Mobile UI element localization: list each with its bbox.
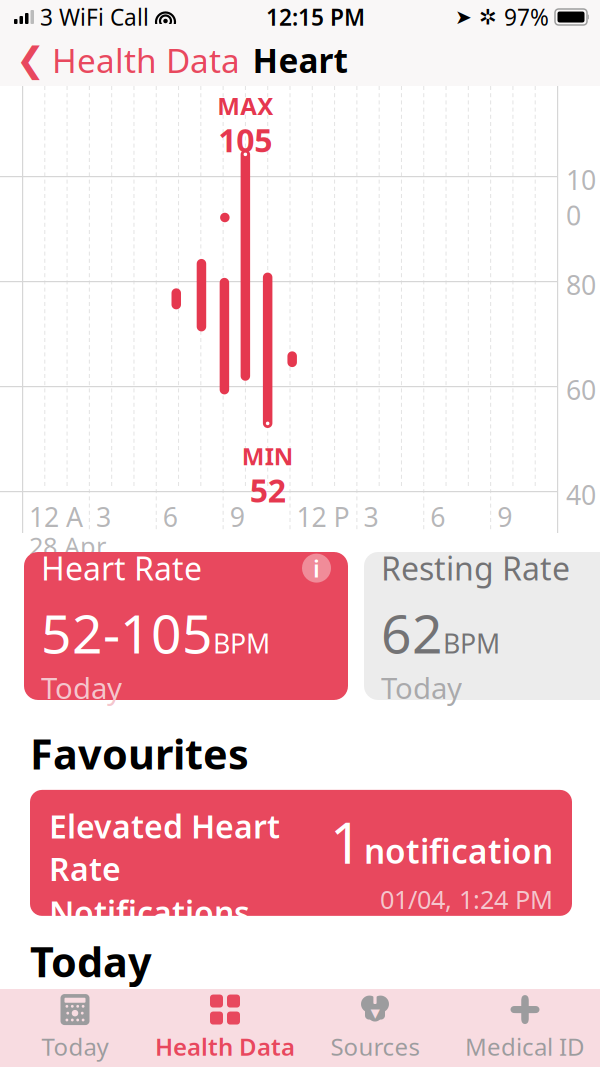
- staticText: 62: [381, 597, 443, 668]
- staticText: i: [313, 552, 320, 584]
- staticText: 80: [566, 267, 596, 302]
- button[interactable]: Heart Rate: [24, 552, 348, 700]
- staticText: 6: [430, 499, 445, 534]
- staticText: Today: [41, 668, 122, 707]
- staticText: 9: [497, 499, 512, 534]
- staticText: 12 P: [296, 499, 349, 534]
- staticText: Medical ID: [465, 1031, 585, 1062]
- staticText: 12:15 PM: [266, 2, 365, 32]
- staticText: 01/04, 1:24 PM: [380, 882, 553, 916]
- staticText: 12 A: [29, 499, 83, 534]
- staticText: Heart Rate: [41, 547, 202, 589]
- button[interactable]: Resting Rate: [364, 552, 600, 700]
- staticText: Today: [381, 668, 462, 707]
- staticText: 3: [363, 499, 378, 534]
- staticText: MIN: [242, 440, 294, 472]
- staticText: 52: [250, 469, 286, 511]
- staticText: BPM: [213, 625, 270, 661]
- button[interactable]: Elevated Heart Rate: [30, 790, 572, 916]
- staticText: 60: [566, 372, 596, 407]
- staticText: ➤: [455, 6, 472, 28]
- staticText: 97%: [504, 2, 555, 32]
- staticText: ✲: [472, 5, 504, 29]
- staticText: ▾: [370, 1002, 379, 1023]
- staticText: 6: [163, 499, 178, 534]
- staticText: Favourites: [30, 726, 249, 781]
- staticText: Sources: [330, 1031, 419, 1062]
- staticText: Elevated Heart Rate: [49, 805, 280, 890]
- staticText: 1: [330, 805, 362, 879]
- staticText: 100: [566, 162, 596, 233]
- staticText: notification: [364, 829, 553, 873]
- staticText: BPM: [443, 625, 500, 661]
- staticText: 3 WiFi Call: [34, 2, 155, 32]
- staticText: 52-105: [41, 597, 213, 668]
- staticText: 40: [566, 477, 596, 512]
- staticText: Notifications: [49, 891, 250, 933]
- staticText: 9: [230, 499, 245, 534]
- button[interactable]: ❮: [0, 30, 240, 90]
- staticText: Today: [30, 934, 152, 989]
- staticText: Health Data: [52, 38, 240, 82]
- staticText: Health Data: [155, 1031, 295, 1062]
- button[interactable]: Health Data: [150, 989, 300, 1067]
- button[interactable]: ▾: [300, 989, 450, 1067]
- staticText: Resting Rate: [381, 547, 570, 589]
- staticText: MAX: [217, 90, 273, 122]
- staticText: ❮: [16, 40, 45, 80]
- staticText: 3: [96, 499, 111, 534]
- staticText: Heart: [252, 38, 347, 82]
- staticText: 105: [218, 119, 272, 161]
- button[interactable]: Today: [0, 989, 150, 1067]
- button[interactable]: Medical ID: [450, 989, 600, 1067]
- staticText: 28 Apr: [29, 529, 106, 563]
- staticText: Today: [41, 1031, 108, 1062]
